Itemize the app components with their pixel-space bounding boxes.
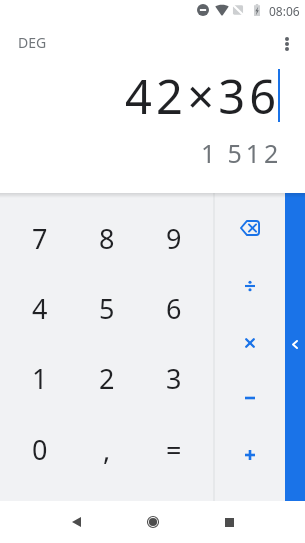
staticText: 6 <box>166 290 182 327</box>
button[interactable]: = <box>140 414 207 485</box>
button[interactable]: Delete <box>215 200 285 256</box>
staticText: 42×36 <box>125 64 281 128</box>
button[interactable]: Back <box>58 504 94 540</box>
staticText: 4 <box>32 290 48 327</box>
button[interactable]: Formula 42 x 36 equals 1 512 <box>0 57 305 193</box>
button[interactable]: 8 <box>73 203 140 273</box>
button[interactable]: 2 <box>73 343 140 414</box>
button[interactable]: More options <box>270 27 304 61</box>
button[interactable]: Recent apps <box>211 504 247 540</box>
other: Battery charging <box>254 4 260 16</box>
button[interactable]: Home <box>135 504 171 540</box>
staticText: , <box>103 431 111 468</box>
other: No signal <box>232 4 244 16</box>
staticText: 8 <box>99 220 115 257</box>
other: Do not disturb <box>197 4 209 16</box>
staticText: 7 <box>32 220 48 257</box>
staticText: 08:06 <box>269 3 300 19</box>
button[interactable]: 6 <box>140 273 207 343</box>
staticText: = <box>166 431 182 468</box>
button[interactable]: 5 <box>73 273 140 343</box>
staticText: 1 <box>32 360 48 397</box>
button[interactable]: Divide <box>215 256 285 312</box>
button[interactable]: 0 <box>6 414 73 485</box>
button[interactable]: 3 <box>140 343 207 414</box>
button[interactable]: Multiply <box>215 312 285 369</box>
button[interactable]: 9 <box>140 203 207 273</box>
button[interactable]: Minus <box>215 369 285 426</box>
staticText: 3 <box>166 360 182 397</box>
staticText: 9 <box>166 220 182 257</box>
staticText: 5 <box>99 290 115 327</box>
button[interactable]: DEG <box>18 26 47 58</box>
button[interactable]: 1 <box>6 343 73 414</box>
button[interactable]: 4 <box>6 273 73 343</box>
staticText: 0 <box>32 431 48 468</box>
other: Wi-Fi <box>215 4 229 16</box>
button[interactable]: 7 <box>6 203 73 273</box>
button[interactable]: Plus <box>215 426 285 483</box>
staticText: DEG <box>18 33 47 52</box>
staticText: 1 512 <box>201 136 283 170</box>
staticText: 2 <box>99 360 115 397</box>
button[interactable]: Open advanced panel <box>285 193 305 501</box>
button[interactable]: , <box>73 414 140 485</box>
